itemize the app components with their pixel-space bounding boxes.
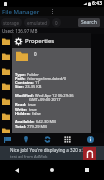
staticText: Write:: [15, 107, 28, 112]
staticText: Folder: [13, 58, 25, 63]
button[interactable]: Pin: [20, 133, 32, 146]
staticText: Folder: [13, 118, 25, 123]
staticText: Modified:: [15, 93, 34, 98]
staticText: true: [29, 107, 37, 112]
staticText: Type:: [15, 72, 26, 77]
staticText: Used: 136.97 MB: [2, 28, 38, 34]
staticText: Wed Apr 12 06:29:36: [35, 93, 74, 98]
staticText: File Manager: [2, 8, 40, 16]
staticText: 11: [35, 80, 40, 85]
staticText: Podcasts: [13, 156, 34, 163]
staticText: Ringtones: [13, 169, 37, 176]
button[interactable]: Ad: [83, 147, 96, 160]
button[interactable]: Alarms: [0, 34, 104, 49]
button[interactable]: 0: [52, 18, 61, 27]
button[interactable]: Info: [84, 133, 96, 146]
button[interactable]: Android: [0, 49, 104, 64]
button[interactable]: More options: [0, 7, 104, 16]
staticText: Path:: [15, 76, 26, 81]
button[interactable]: Grid view: [61, 133, 73, 146]
staticText: Nice job! You're displaying a 320 x 50: [10, 147, 88, 153]
button[interactable]: storage: [1, 18, 22, 27]
staticText: GMT+09:00 2017: [29, 97, 61, 102]
staticText: 23.35 KB: [25, 84, 42, 89]
button[interactable]: Download: [0, 79, 104, 94]
staticText: Notifications: [13, 126, 43, 133]
button[interactable]: Movies: [0, 94, 104, 109]
staticText: 0: [34, 51, 37, 57]
button[interactable]: Recents: [69, 160, 104, 180]
staticText: 642.30 MB: [36, 119, 56, 124]
staticText: Folder: [13, 148, 25, 153]
button[interactable]: Pictures: [0, 139, 104, 154]
staticText: 779.29 MB: [27, 124, 47, 129]
staticText: Hidden:: [15, 111, 31, 116]
staticText: Movies: [13, 96, 30, 103]
button[interactable]: Back: [0, 160, 34, 180]
staticText: Properties: [25, 37, 55, 45]
button[interactable]: Refresh: [41, 133, 53, 146]
staticText: Contains:: [15, 80, 34, 85]
staticText: Android: [13, 51, 32, 58]
button[interactable]: emulated: [24, 18, 50, 27]
staticText: Folder: [13, 73, 25, 78]
staticText: 6:43: [92, 0, 102, 7]
staticText: Folder: [13, 133, 25, 138]
button[interactable]: Notifications: [0, 124, 104, 139]
staticText: false: [32, 111, 41, 116]
staticText: Alarms: [13, 36, 30, 43]
button[interactable]: Bookmarks: [1, 133, 13, 146]
button[interactable]: Search: [78, 18, 100, 27]
staticText: 0: [55, 20, 58, 26]
button[interactable]: Home: [34, 160, 69, 180]
staticText: Download: [13, 81, 37, 88]
staticText: Search: [81, 19, 97, 26]
button[interactable]: Ringtones: [0, 169, 104, 180]
staticText: Music: [13, 111, 27, 118]
staticText: Pictures: [13, 141, 32, 148]
staticText: Read:: [15, 102, 27, 107]
button[interactable]: Podcasts: [0, 154, 104, 169]
staticText: true: [28, 102, 36, 107]
staticText: test ad from AdMob: [10, 154, 48, 159]
staticText: emulated: [27, 20, 48, 26]
button[interactable]: DCIM: [0, 64, 104, 79]
staticText: Folder: [27, 72, 39, 77]
staticText: Total:: [15, 124, 26, 129]
staticText: Folder: [13, 43, 25, 48]
staticText: /storage/emulated/0: [27, 76, 66, 81]
staticText: storage: [3, 20, 20, 26]
staticText: Available:: [15, 119, 35, 124]
staticText: Size:: [15, 84, 24, 89]
button[interactable]: Music: [0, 109, 104, 124]
staticText: Folder: [13, 103, 25, 108]
